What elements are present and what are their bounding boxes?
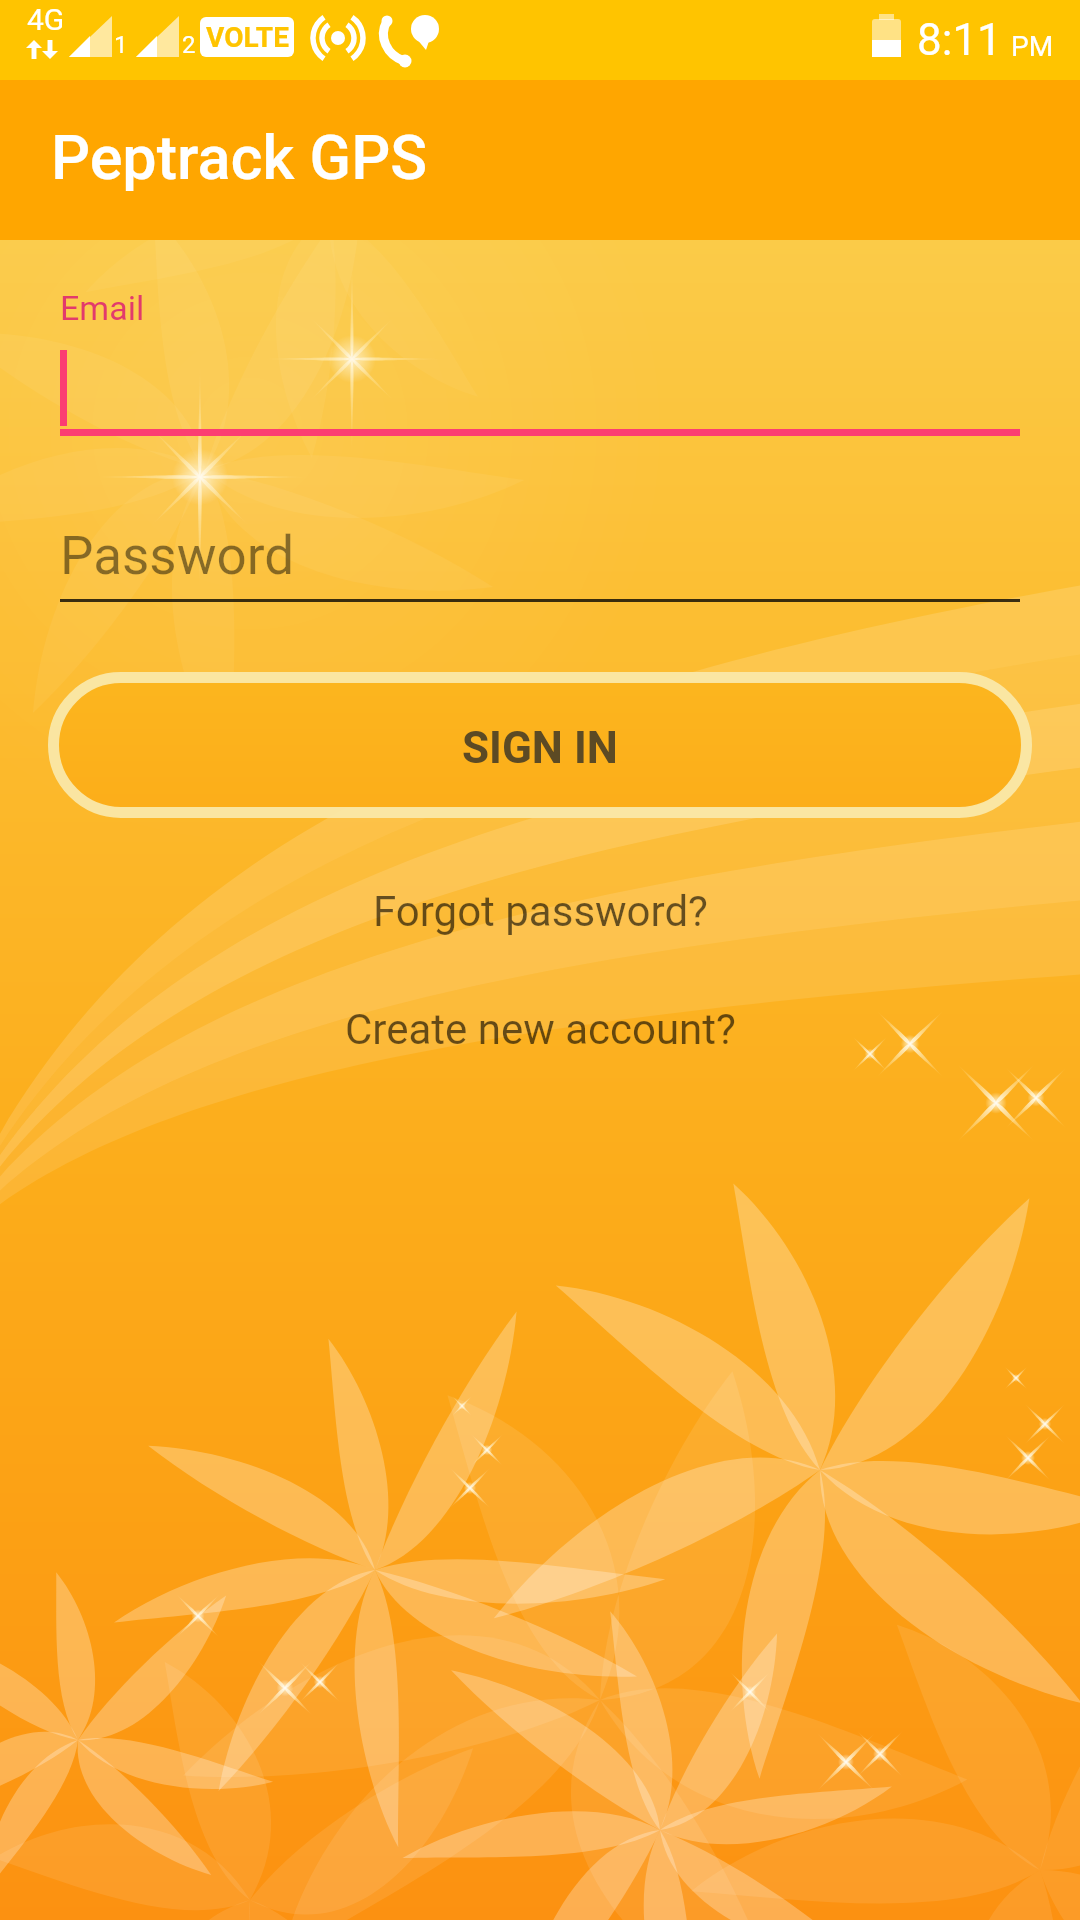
button[interactable]: Create new account? (0, 996, 1080, 1062)
button[interactable]: Password input field (60, 520, 1020, 602)
staticText: 1 (114, 31, 128, 59)
staticText: Create new account? (345, 1005, 736, 1054)
staticText: Password (60, 525, 295, 587)
button[interactable]: Email input field (60, 280, 1020, 436)
staticText: 2 (182, 31, 196, 59)
staticText: VOLTE (206, 21, 289, 54)
staticText: 4G (27, 2, 65, 37)
staticText: SIGN IN (462, 722, 618, 774)
staticText: Email (60, 288, 145, 328)
staticText: 8:11 (917, 14, 1002, 66)
button[interactable]: SIGN IN (48, 672, 1032, 818)
staticText: Peptrack GPS (51, 122, 428, 193)
staticText: PM (1011, 30, 1054, 63)
button[interactable]: Forgot password? (0, 878, 1080, 944)
staticText: Forgot password? (373, 887, 708, 936)
